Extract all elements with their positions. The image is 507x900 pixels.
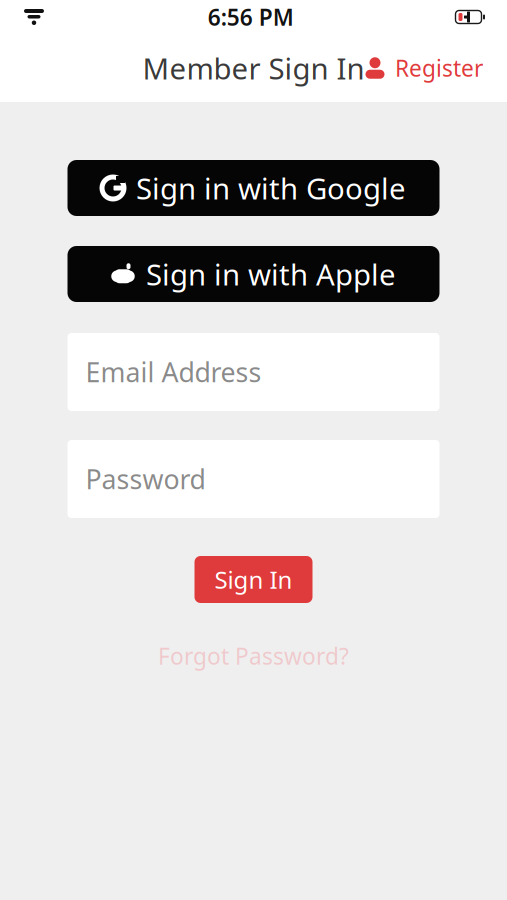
- staticText: Email Address: [85, 354, 261, 390]
- staticText: Register: [395, 53, 483, 83]
- button[interactable]: Sign in with Google: [67, 160, 439, 216]
- staticText: Password: [85, 461, 205, 497]
- staticText: Member Sign In: [142, 48, 364, 87]
- staticText: Forgot Password?: [158, 641, 349, 671]
- button[interactable]: Register: [356, 45, 491, 91]
- staticText: Sign In: [214, 564, 292, 595]
- button[interactable]: Sign in with Apple: [67, 246, 439, 302]
- button[interactable]: Forgot Password?: [148, 637, 359, 675]
- button[interactable]: Password: [67, 440, 439, 518]
- staticText: 6:56 PM: [208, 2, 294, 32]
- staticText: Sign in with Apple: [146, 254, 396, 293]
- staticText: Sign in with Google: [136, 168, 406, 207]
- button[interactable]: Email Address: [67, 333, 439, 411]
- button[interactable]: Sign In: [194, 556, 312, 603]
